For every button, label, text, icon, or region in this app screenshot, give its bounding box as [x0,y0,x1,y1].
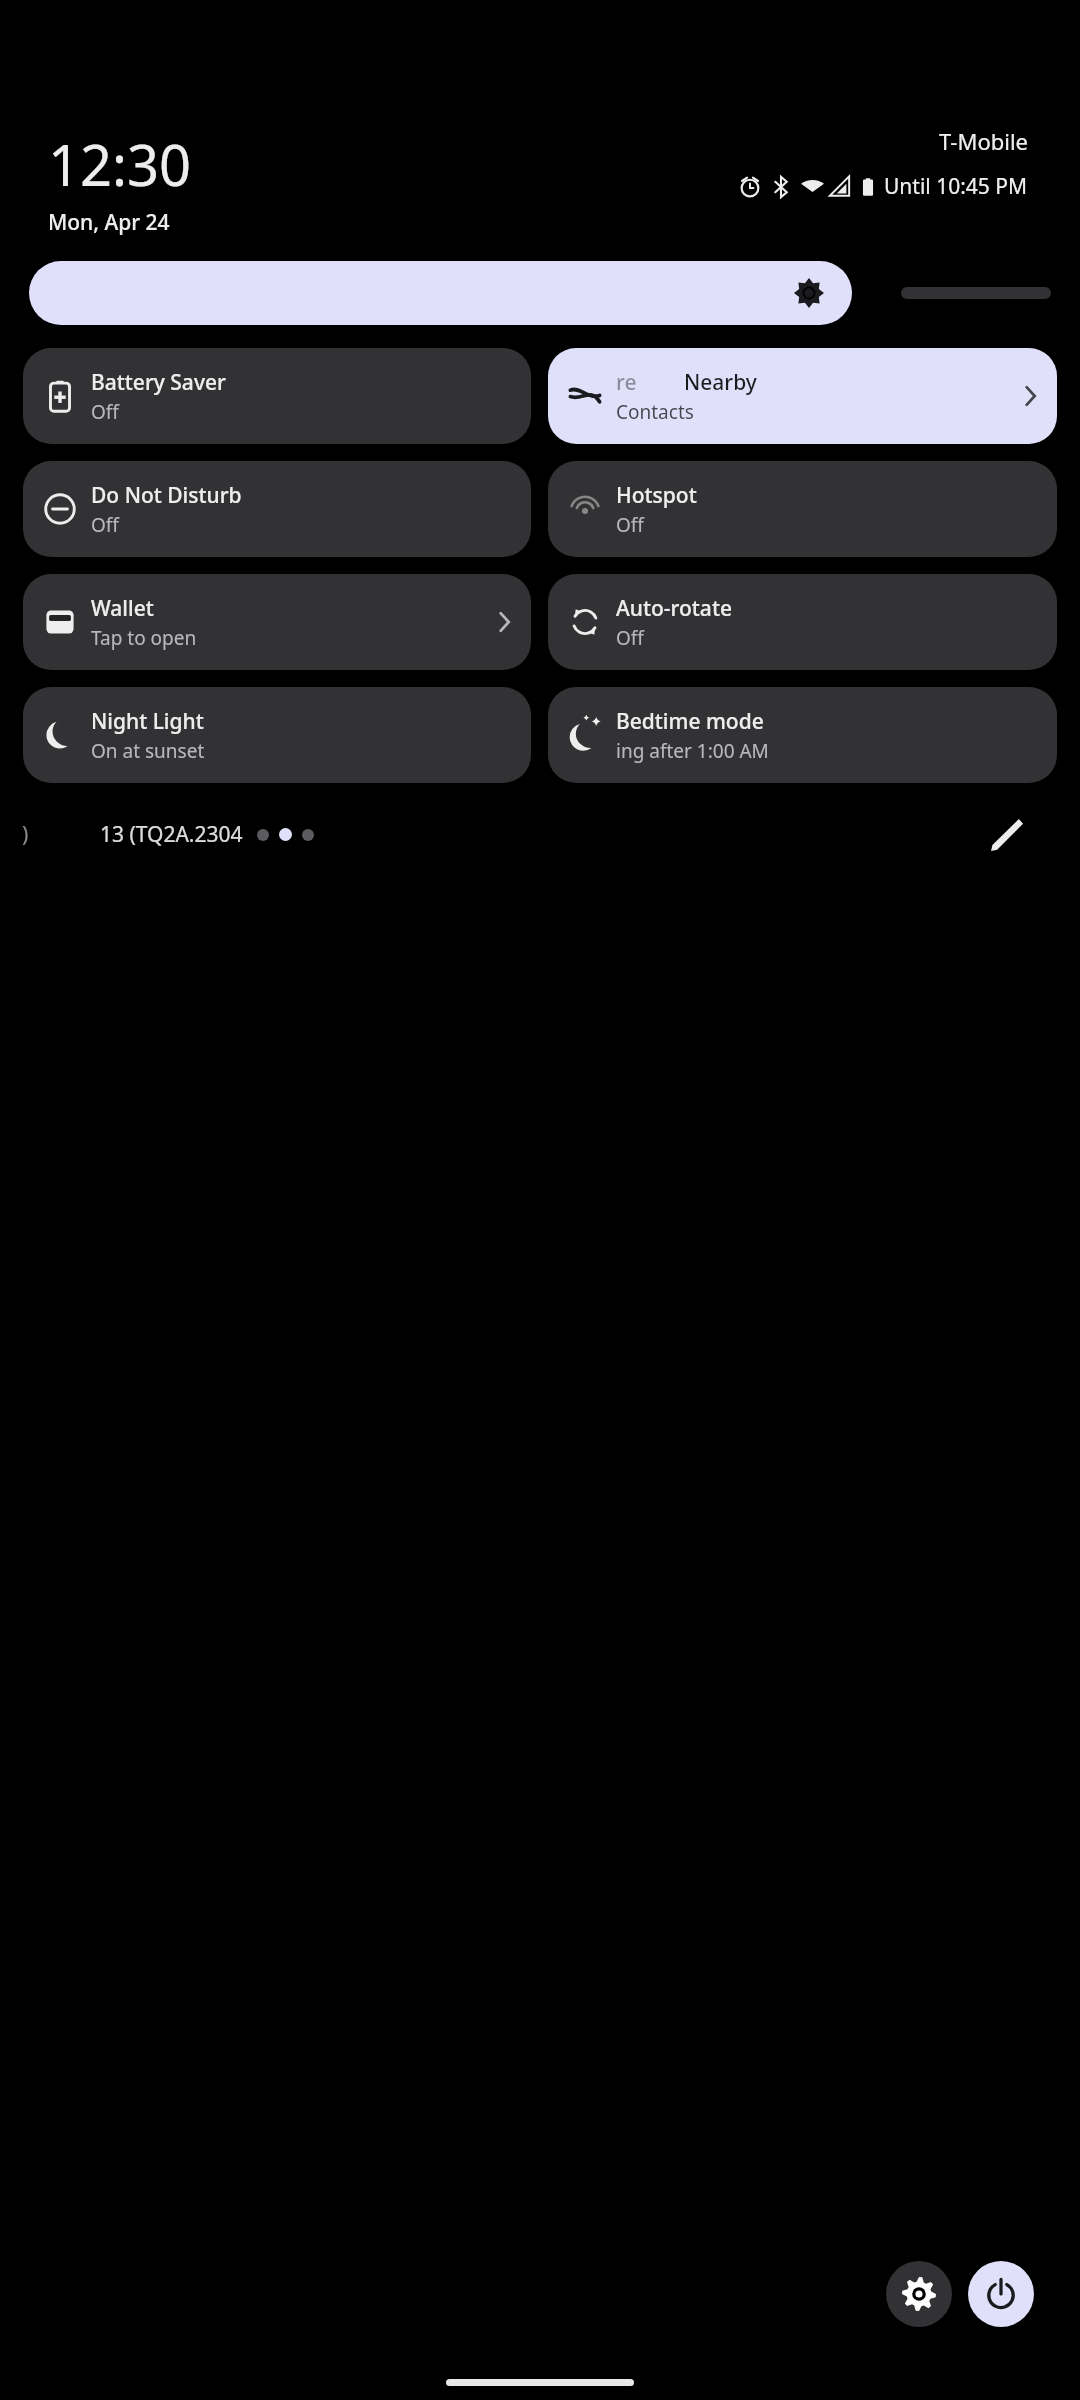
staticText: Night Light [91,707,204,736]
staticText: Auto-rotate [616,594,732,623]
button[interactable]: Edit tiles [982,810,1030,858]
staticText: Contacts [616,399,694,425]
staticText: 12:30 [48,126,192,202]
other: Bluetooth [770,176,792,198]
staticText: Nearby [684,368,757,397]
button[interactable]: Bedtime mode [548,687,1057,783]
other: Wi-Fi [801,175,824,198]
button[interactable]: Night Light [23,687,531,783]
staticText: Until 10:45 PM [884,172,1028,201]
staticText: ing after 1:00 AM [616,738,769,764]
staticText: Wallet [91,594,154,623]
button[interactable]: re [548,348,1057,444]
other: Brightness [794,278,824,308]
other: Alarm set [739,176,761,198]
button[interactable]: Settings [886,2261,952,2327]
button[interactable]: Hotspot [548,461,1057,557]
staticText: Bedtime mode [616,707,764,736]
button[interactable]: Power [968,2261,1034,2327]
staticText: 13 (TQ2A.2304 [100,820,243,849]
staticText: Off [616,625,644,651]
button[interactable]: Battery Saver [23,348,531,444]
other: Battery [857,176,879,198]
staticText: Mon, Apr 24 [48,208,170,237]
staticText: On at sunset [91,738,205,764]
staticText: Off [91,512,119,538]
staticText: Off [91,399,119,425]
staticText: Off [616,512,644,538]
staticText: Hotspot [616,481,697,510]
button[interactable]: Brightness [29,261,852,325]
staticText: T-Mobile [939,126,1028,156]
staticText: Tap to open [91,625,197,651]
button[interactable]: Auto-rotate [548,574,1057,670]
staticText: Do Not Disturb [91,481,242,510]
button[interactable]: Wallet [23,574,531,670]
staticText: re [616,368,637,397]
staticText: ) [22,820,29,849]
button[interactable]: Do Not Disturb [23,461,531,557]
other: Mobile signal [828,175,851,198]
staticText: Battery Saver [91,368,226,397]
